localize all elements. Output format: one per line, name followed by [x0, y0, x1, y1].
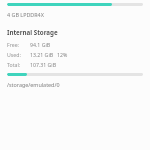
- button[interactable]: 4 GB LPDDR4X: [7, 11, 44, 18]
- staticText: 13.21 GiB: [30, 51, 54, 58]
- staticText: 107.31 GiB: [30, 61, 57, 68]
- staticText: Total:: [7, 61, 21, 68]
- button[interactable]: Used:: [7, 51, 143, 58]
- staticText: Free:: [7, 41, 19, 48]
- button[interactable]: Free:: [7, 41, 143, 48]
- staticText: 12%: [57, 51, 68, 58]
- button[interactable]: /storage/emulated/0: [7, 81, 60, 88]
- staticText: 94.1 GiB: [30, 41, 51, 48]
- button[interactable]: Internal Storage: [7, 28, 58, 36]
- staticText: Used:: [7, 51, 21, 58]
- button[interactable]: Total:: [7, 61, 143, 68]
